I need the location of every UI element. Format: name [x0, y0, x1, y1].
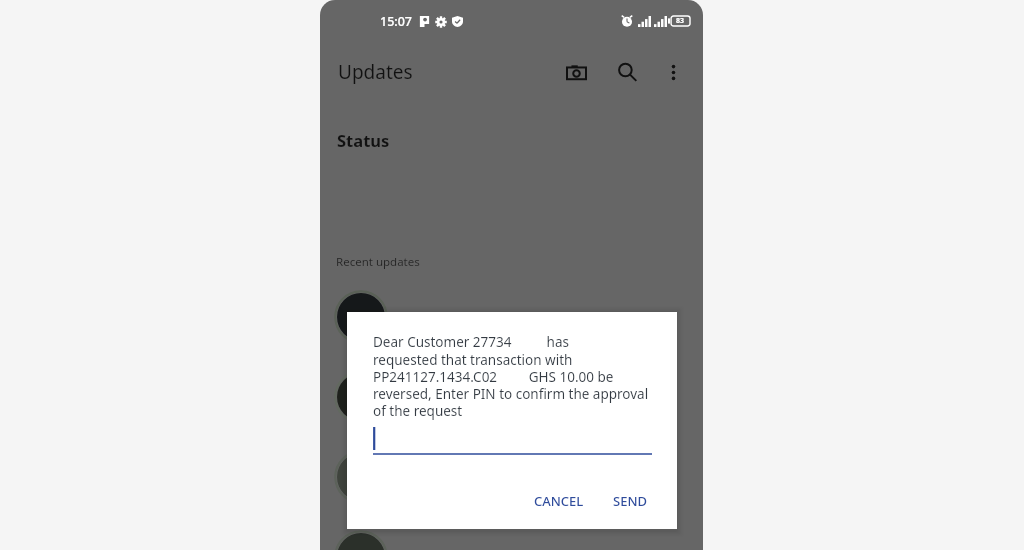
staticText: 15:07: [380, 13, 413, 30]
staticText: Recent updates: [336, 254, 420, 270]
staticText: Ama: [399, 387, 429, 406]
staticText: Dear Customer 27734 has requested that t…: [373, 333, 649, 420]
button[interactable]: Kwame B: [320, 277, 703, 357]
button[interactable]: SEND: [605, 486, 655, 516]
button[interactable]: Akosua: [320, 517, 703, 550]
button[interactable]: Yaw: [320, 437, 703, 517]
staticText: Today, 14:02: [399, 328, 464, 343]
button[interactable]: Search: [609, 54, 645, 90]
staticText: CANCEL: [534, 492, 584, 510]
staticText: Kwame B: [399, 307, 461, 326]
button[interactable]: Camera: [558, 54, 594, 90]
staticText: Updates: [338, 59, 413, 85]
button[interactable]: More options: [655, 54, 691, 90]
button[interactable]: Ama: [320, 357, 703, 437]
staticText: Status: [337, 129, 390, 151]
staticText: 83: [676, 16, 685, 26]
staticText: SEND: [613, 492, 647, 510]
button[interactable]: CANCEL: [526, 486, 592, 516]
staticText: Today, 11:38: [399, 408, 464, 423]
